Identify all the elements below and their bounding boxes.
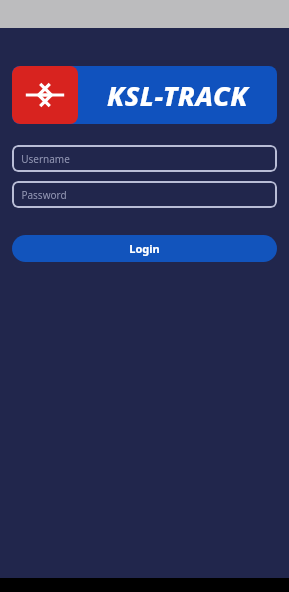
other: KSL-Track logo bbox=[12, 66, 78, 124]
button[interactable]: KSL-Track logo bbox=[12, 66, 277, 124]
button[interactable]: Password bbox=[12, 181, 277, 208]
staticText: Login bbox=[129, 241, 160, 256]
staticText: KSL-TRACK bbox=[107, 77, 248, 114]
staticText: Username bbox=[21, 152, 70, 166]
button[interactable]: Login bbox=[12, 235, 277, 262]
staticText: Password bbox=[21, 188, 67, 202]
button[interactable]: Username bbox=[12, 145, 277, 172]
